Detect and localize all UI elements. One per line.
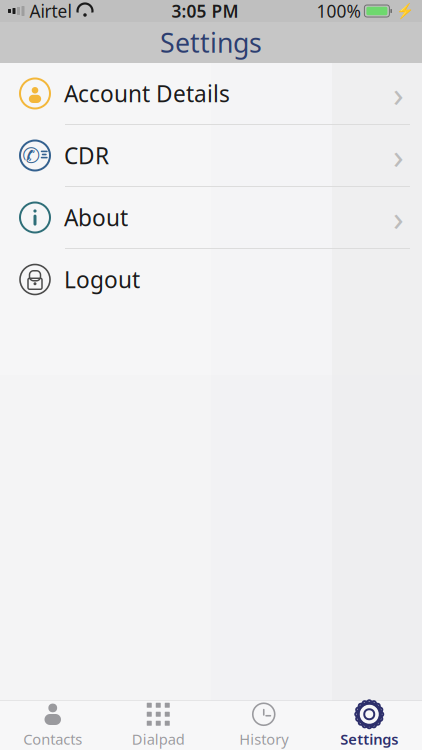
- staticText: 3:05 PM: [171, 0, 238, 22]
- staticText: Settings: [160, 25, 262, 60]
- staticText: Airtel: [29, 0, 71, 22]
- staticText: ›: [393, 132, 404, 178]
- staticText: ⚡: [396, 3, 414, 19]
- staticText: Account Details: [64, 78, 230, 108]
- button[interactable]: Dialpad: [105, 701, 211, 750]
- staticText: ✆: [22, 143, 40, 168]
- staticText: About: [64, 202, 128, 232]
- button[interactable]: ✆: [0, 125, 422, 186]
- button[interactable]: Account Details: [0, 63, 422, 124]
- button[interactable]: About: [0, 187, 422, 248]
- staticText: History: [239, 729, 288, 749]
- button[interactable]: Logout: [0, 249, 422, 310]
- staticText: Logout: [64, 264, 140, 294]
- staticText: Contacts: [23, 729, 82, 749]
- button[interactable]: History: [211, 701, 316, 750]
- staticText: CDR: [64, 140, 109, 170]
- staticText: ›: [393, 70, 404, 116]
- staticText: Dialpad: [132, 729, 185, 749]
- staticText: ›: [393, 194, 404, 240]
- staticText: 100%: [316, 0, 360, 22]
- staticText: Settings: [340, 729, 398, 749]
- button[interactable]: Settings: [316, 701, 422, 750]
- button[interactable]: Contacts: [0, 701, 105, 750]
